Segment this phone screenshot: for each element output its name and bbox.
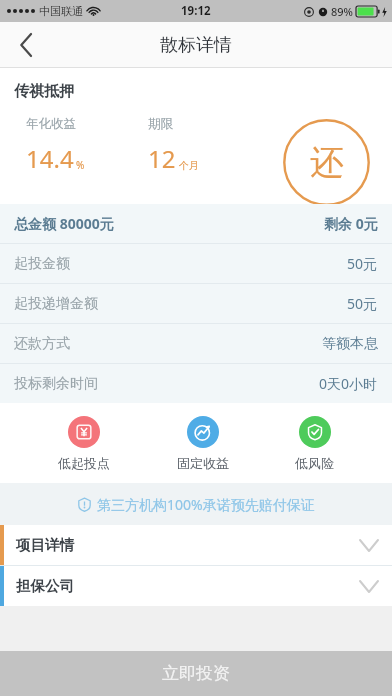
staticText: 总金额 80000元 bbox=[14, 214, 114, 233]
staticText: 固定收益 bbox=[177, 455, 229, 471]
staticText: 还 bbox=[310, 141, 344, 184]
button[interactable]: 投标剩余时间 bbox=[0, 364, 392, 403]
staticText: 传祺抵押 bbox=[14, 82, 74, 101]
staticText: 个月 bbox=[179, 159, 199, 172]
button[interactable]: 固定收益 bbox=[169, 414, 237, 473]
staticText: 0天0小时 bbox=[319, 374, 378, 393]
staticText: 低风险 bbox=[295, 455, 334, 471]
staticText: 等额本息 bbox=[322, 335, 378, 353]
staticText: 中国联通 bbox=[39, 4, 83, 18]
staticText: 还款方式 bbox=[14, 335, 70, 353]
staticText: 起投递增金额 bbox=[14, 295, 98, 313]
staticText: 89% bbox=[331, 4, 353, 19]
staticText: 12 bbox=[148, 142, 176, 175]
button[interactable]: Back bbox=[0, 22, 52, 68]
button[interactable]: 起投金额 bbox=[0, 244, 392, 283]
staticText: 50元 bbox=[347, 294, 378, 313]
staticText: 年化收益 bbox=[26, 116, 76, 132]
button[interactable]: 低起投点 bbox=[50, 414, 118, 473]
button[interactable]: 起投递增金额 bbox=[0, 284, 392, 323]
staticText: 19:12 bbox=[181, 3, 211, 19]
staticText: 低起投点 bbox=[58, 455, 110, 471]
button[interactable]: 项目详情 bbox=[0, 525, 392, 565]
button[interactable]: 还款方式 bbox=[0, 324, 392, 363]
button[interactable]: 第三方机构100%承诺预先赔付保证 bbox=[0, 483, 392, 525]
staticText: 担保公司 bbox=[16, 577, 74, 595]
staticText: 散标详情 bbox=[160, 34, 232, 57]
staticText: 50元 bbox=[347, 254, 378, 273]
staticText: 剩余 0元 bbox=[324, 214, 378, 233]
staticText: 投标剩余时间 bbox=[14, 375, 98, 393]
staticText: 第三方机构100%承诺预先赔付保证 bbox=[97, 495, 315, 514]
staticText: 立即投资 bbox=[162, 663, 230, 684]
staticText: 14.4 bbox=[26, 142, 74, 175]
button[interactable]: 低风险 bbox=[287, 414, 342, 473]
button[interactable]: 立即投资 bbox=[0, 651, 392, 696]
button[interactable]: 总金额 80000元 bbox=[0, 204, 392, 243]
staticText: 起投金额 bbox=[14, 255, 70, 273]
staticText: 期限 bbox=[148, 116, 173, 132]
button[interactable]: 担保公司 bbox=[0, 566, 392, 606]
staticText: 项目详情 bbox=[16, 536, 74, 554]
staticText: % bbox=[76, 158, 85, 172]
